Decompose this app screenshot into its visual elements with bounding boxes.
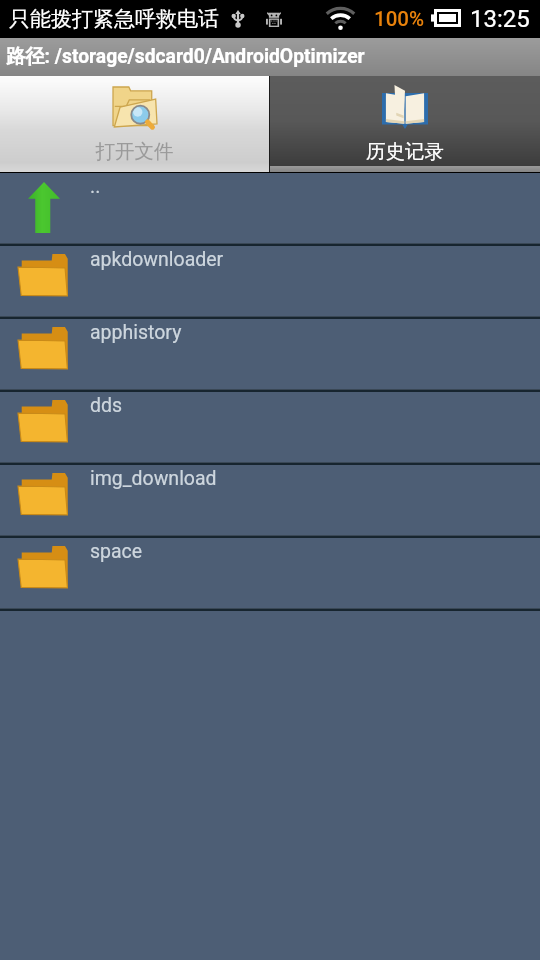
button[interactable]: .. bbox=[0, 173, 540, 246]
staticText: img_download bbox=[90, 467, 217, 490]
staticText: apkdownloader bbox=[90, 248, 224, 271]
button[interactable]: 路径: /storage/sdcard0/AndroidOptimizer bbox=[0, 38, 540, 76]
button[interactable]: 打开文件 bbox=[0, 76, 269, 172]
staticText: 只能拨打紧急呼救电话 bbox=[9, 6, 219, 32]
staticText: 历史记录 bbox=[270, 139, 540, 164]
staticText: apphistory bbox=[90, 321, 182, 344]
button[interactable]: dds bbox=[0, 392, 540, 465]
button[interactable]: img_download bbox=[0, 465, 540, 538]
staticText: dds bbox=[90, 394, 123, 417]
staticText: space bbox=[90, 540, 143, 563]
button[interactable]: 历史记录 bbox=[270, 76, 540, 172]
button[interactable]: apphistory bbox=[0, 319, 540, 392]
staticText: 13:25 bbox=[470, 5, 530, 33]
staticText: 打开文件 bbox=[0, 139, 269, 164]
staticText: 路径: /storage/sdcard0/AndroidOptimizer bbox=[6, 44, 365, 68]
button[interactable]: apkdownloader bbox=[0, 246, 540, 319]
button[interactable]: space bbox=[0, 538, 540, 611]
staticText: .. bbox=[90, 175, 101, 198]
staticText: 100% bbox=[374, 7, 425, 31]
